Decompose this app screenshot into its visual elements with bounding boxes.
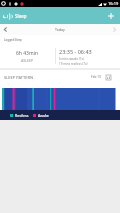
staticText: Awake [38, 113, 49, 118]
staticText: Sleep [15, 13, 27, 19]
staticText: Today [55, 27, 65, 32]
staticText: Restless [15, 113, 29, 118]
button[interactable]: Share sleep graph [105, 74, 112, 81]
staticText: 6h 43min [16, 50, 39, 57]
staticText: 23:35 - 06:43 [59, 48, 92, 55]
button[interactable]: Navigation menu [1, 9, 15, 23]
staticText: 16:19 [108, 1, 119, 6]
button[interactable]: Previous day [0, 24, 11, 35]
staticText: ASLEEP [21, 58, 34, 63]
staticText: 19 mins restless (7x) [59, 62, 88, 66]
staticText: SLEEP PATTERN [4, 75, 33, 80]
button[interactable]: Add sleep record [104, 9, 117, 22]
staticText: Feb 13 [91, 75, 101, 79]
button[interactable]: Next day [109, 24, 120, 35]
staticText: 6 mins awake (1x) [59, 57, 85, 61]
staticText: Logged Sleep [4, 38, 22, 42]
